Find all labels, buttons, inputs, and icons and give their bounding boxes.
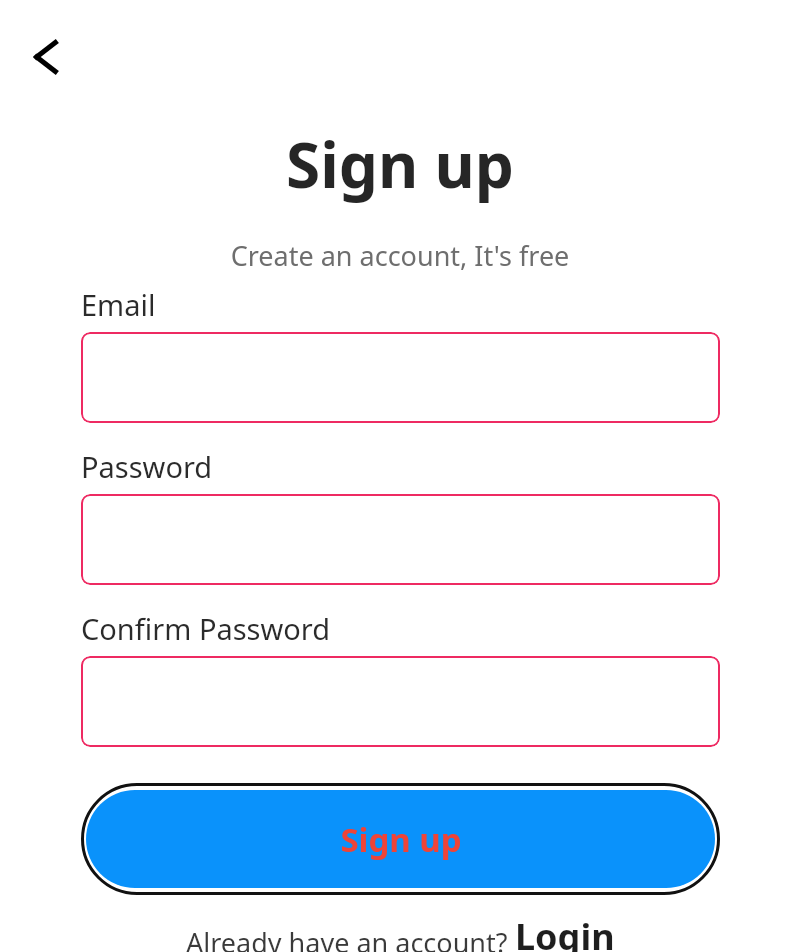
staticText: Password — [81, 447, 213, 486]
button[interactable]: Confirm Password — [81, 656, 720, 747]
staticText: Create an account, It's free — [0, 237, 800, 274]
staticText: Already have an account? — [186, 924, 515, 952]
button[interactable]: Login — [515, 912, 615, 952]
button[interactable]: Password — [81, 494, 720, 585]
staticText: Sign up — [340, 817, 462, 862]
staticText: Email — [81, 285, 156, 324]
button[interactable]: Email — [81, 332, 720, 423]
staticText: Sign up — [0, 122, 800, 206]
button[interactable]: Sign up — [81, 783, 720, 895]
staticText: Login — [515, 912, 615, 952]
staticText: Confirm Password — [81, 609, 331, 648]
button[interactable]: Back — [12, 21, 80, 93]
